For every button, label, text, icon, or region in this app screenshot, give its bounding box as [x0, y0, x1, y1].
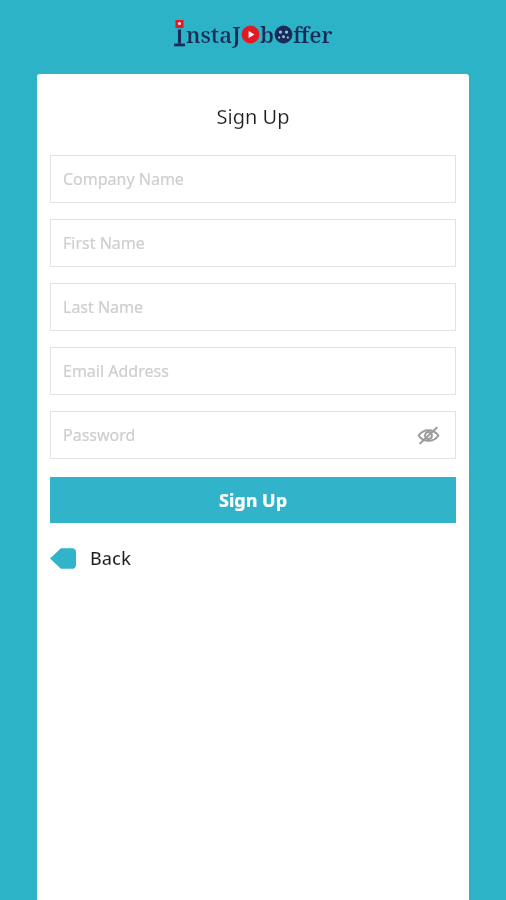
button[interactable]: Show password	[414, 421, 442, 449]
staticText: nstaJ	[186, 19, 241, 49]
staticText: Sign Up	[37, 103, 469, 130]
staticText: Company Name	[63, 168, 184, 190]
button[interactable]: Back	[50, 541, 456, 575]
staticText: b	[260, 19, 274, 49]
staticText: First Name	[63, 232, 145, 254]
button[interactable]: Company Name	[50, 155, 456, 203]
staticText: Sign Up	[219, 488, 288, 513]
button[interactable]: Sign Up	[50, 477, 456, 523]
staticText: Back	[90, 546, 131, 571]
staticText: Last Name	[63, 296, 144, 318]
button[interactable]: Last Name	[50, 283, 456, 331]
staticText: Password	[63, 424, 136, 446]
staticText: ffer	[293, 19, 333, 49]
button[interactable]: First Name	[50, 219, 456, 267]
button[interactable]: Email Address	[50, 347, 456, 395]
staticText: Email Address	[63, 360, 169, 382]
button[interactable]: Password	[50, 411, 456, 459]
